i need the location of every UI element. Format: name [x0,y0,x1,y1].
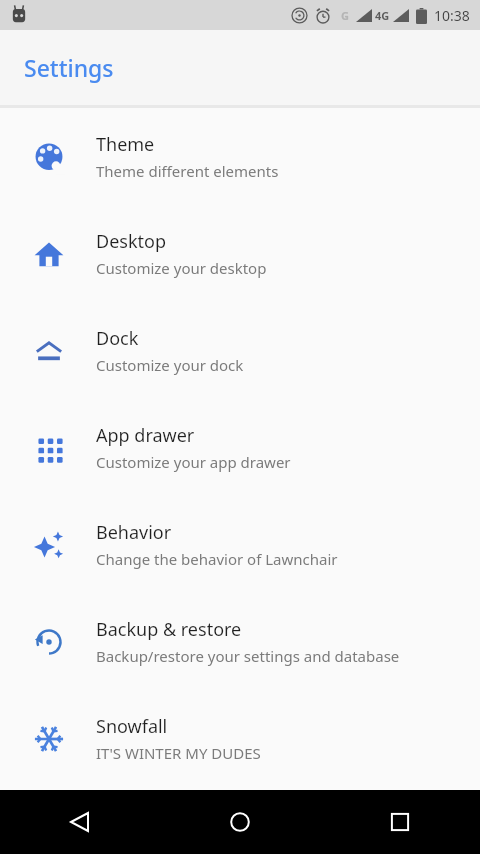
staticText: Backup/restore your settings and databas… [96,646,400,666]
staticText: Snowfall [96,714,168,739]
button[interactable]: Back [0,790,160,854]
staticText: Settings [24,52,114,83]
button[interactable]: Theme [0,108,480,205]
staticText: Backup & restore [96,617,242,642]
staticText: Dock [96,326,139,351]
staticText: Change the behavior of Lawnchair [96,549,338,569]
staticText: Theme [96,132,155,157]
staticText: Theme different elements [96,161,279,181]
button[interactable]: Backup & restore [0,593,480,690]
staticText: Customize your dock [96,355,244,375]
staticText: Desktop [96,229,166,254]
button[interactable]: Desktop [0,205,480,302]
button[interactable]: Behavior [0,496,480,593]
staticText: 10:38 [434,6,470,25]
button[interactable]: Dock [0,302,480,399]
button[interactable]: App drawer [0,399,480,496]
button[interactable]: Home [160,790,320,854]
staticText: Behavior [96,520,172,545]
staticText: 4G [375,8,390,23]
staticText: Customize your app drawer [96,452,291,472]
staticText: App drawer [96,423,195,448]
button[interactable]: Recents [320,790,480,854]
staticText: IT'S WINTER MY DUDES [96,743,261,763]
staticText: Customize your desktop [96,258,267,278]
staticText: G [341,8,349,23]
button[interactable]: Snowfall [0,690,480,787]
